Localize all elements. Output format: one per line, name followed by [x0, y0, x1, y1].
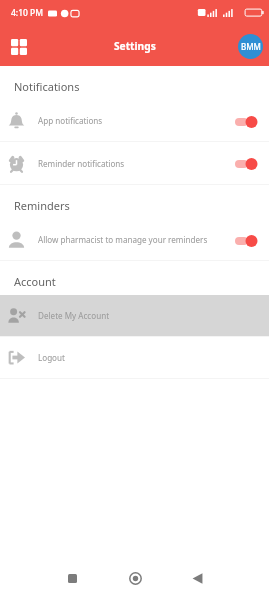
- button[interactable]: Allow pharmacist to manage your reminder…: [0, 219, 269, 260]
- button[interactable]: Menu: [4, 31, 34, 61]
- staticText: Reminders: [14, 198, 70, 213]
- staticText: Allow pharmacist to manage your reminder…: [38, 234, 229, 245]
- staticText: BMM: [241, 41, 261, 52]
- button[interactable]: Reminder notifications: [0, 142, 269, 184]
- staticText: App notifications: [38, 115, 229, 126]
- button[interactable]: BMM: [238, 34, 263, 59]
- staticText: Notifications: [14, 79, 80, 94]
- staticText: 4:10 PM: [11, 7, 44, 19]
- staticText: Settings: [114, 39, 156, 53]
- button[interactable]: Logout: [0, 337, 269, 378]
- button[interactable]: Delete My Account: [0, 295, 269, 336]
- button[interactable]: Home: [121, 564, 149, 592]
- staticText: Account: [14, 274, 56, 289]
- button[interactable]: Back: [183, 564, 211, 592]
- button[interactable]: App notifications: [0, 100, 269, 141]
- staticText: Reminder notifications: [38, 158, 229, 169]
- staticText: Delete My Account: [38, 310, 257, 321]
- staticText: Logout: [38, 352, 257, 363]
- button[interactable]: Recents: [58, 564, 86, 592]
